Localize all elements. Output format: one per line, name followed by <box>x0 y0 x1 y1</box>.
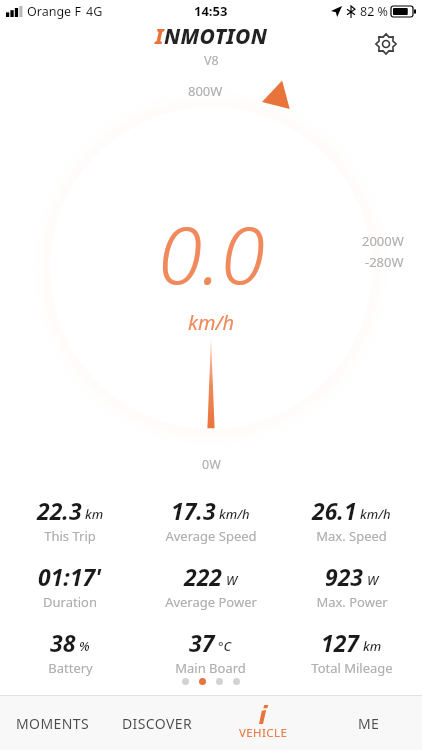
button[interactable]: Settings <box>370 28 402 60</box>
staticText: km/h <box>360 505 391 523</box>
staticText: 38 <box>50 627 76 658</box>
button[interactable]: 17.3 <box>140 494 281 546</box>
button[interactable]: 26.1 <box>281 494 422 546</box>
staticText: 14:53 <box>194 2 228 20</box>
staticText: km/h <box>219 505 250 523</box>
staticText: -280W <box>365 253 404 271</box>
staticText: Main Board <box>175 659 246 677</box>
button[interactable]: VEHICLE <box>210 701 316 745</box>
staticText: VEHICLE <box>239 725 288 741</box>
staticText: Average Power <box>165 593 257 611</box>
staticText: 01:17' <box>38 561 102 592</box>
staticText: MOMENTS <box>16 714 90 733</box>
staticText: W <box>367 571 379 589</box>
button[interactable]: 22.3 <box>0 494 140 546</box>
button[interactable]: 222 <box>140 560 281 612</box>
staticText: Duration <box>43 593 97 611</box>
button[interactable]: DISCOVER <box>105 710 210 737</box>
staticText: °C <box>218 637 232 655</box>
button[interactable]: 37 <box>140 626 281 678</box>
staticText: 26.1 <box>312 495 357 526</box>
staticText: 2000W <box>362 232 404 250</box>
staticText: km <box>363 637 382 655</box>
staticText: % <box>79 637 90 655</box>
staticText: 0W <box>202 456 221 473</box>
staticText: Average Speed <box>165 527 257 545</box>
button[interactable]: ME <box>316 710 422 737</box>
staticText: km <box>85 505 104 523</box>
staticText: 800W <box>188 82 223 100</box>
staticText: Orange F <box>27 3 81 20</box>
button[interactable]: 38 <box>0 626 140 678</box>
staticText: DISCOVER <box>122 714 193 733</box>
button[interactable]: MOMENTS <box>0 710 105 737</box>
staticText: 37 <box>189 627 215 658</box>
staticText: Battery <box>48 659 93 677</box>
staticText: 923 <box>325 561 364 592</box>
staticText: ME <box>358 714 380 733</box>
staticText: 127 <box>321 627 360 658</box>
staticText: 22.3 <box>37 495 82 526</box>
staticText: km/h <box>188 309 235 336</box>
staticText: Max. Speed <box>316 527 387 545</box>
staticText: V8 <box>204 52 219 69</box>
staticText: 0.0 <box>158 198 265 307</box>
staticText: Total Mileage <box>311 659 393 677</box>
button[interactable]: 923 <box>281 560 422 612</box>
staticText: W <box>226 571 238 589</box>
staticText: 4G <box>86 3 103 20</box>
staticText: I <box>155 22 164 51</box>
button[interactable]: 01:17' <box>0 560 140 612</box>
button[interactable]: 127 <box>281 626 422 678</box>
staticText: Max. Power <box>316 593 388 611</box>
staticText: NMOTION <box>164 22 268 51</box>
staticText: This Trip <box>44 527 96 545</box>
staticText: 17.3 <box>171 495 216 526</box>
staticText: 82 % <box>360 3 388 20</box>
staticText: 222 <box>184 561 223 592</box>
